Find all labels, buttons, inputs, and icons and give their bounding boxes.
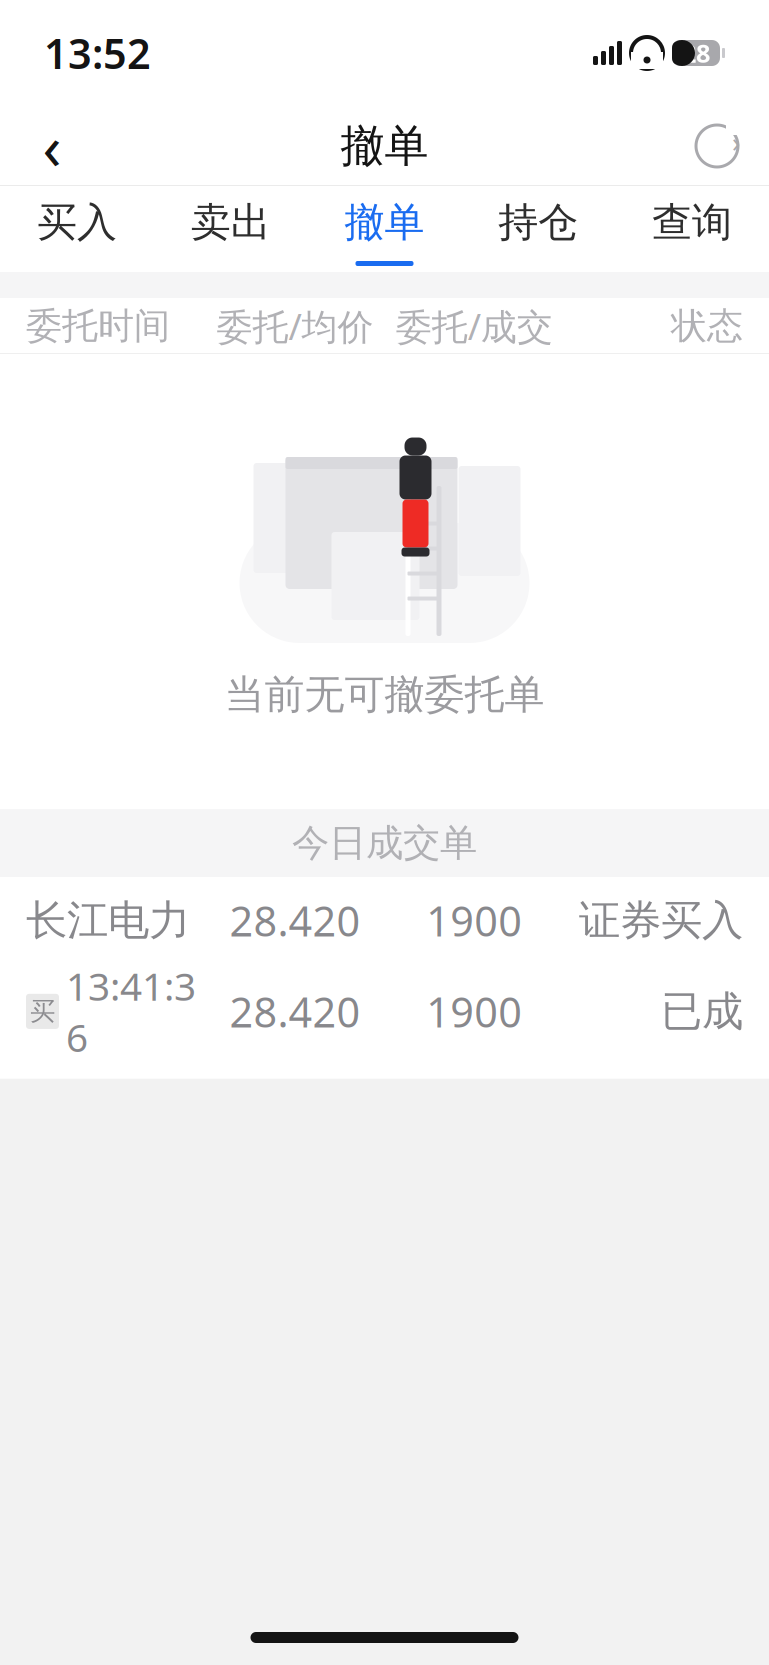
staticText: 13:52: [44, 26, 151, 80]
button[interactable]: 长江电力: [0, 877, 769, 1079]
button[interactable]: 持仓: [461, 186, 615, 272]
staticText: ‹: [42, 105, 61, 187]
button[interactable]: 买入: [0, 186, 154, 272]
button[interactable]: 卖出: [154, 186, 308, 272]
staticText: 卖出: [191, 198, 271, 247]
staticText: 委托时间: [26, 304, 170, 348]
staticText: 委托/成交: [396, 302, 553, 350]
button[interactable]: Back: [8, 107, 96, 185]
button[interactable]: 查询: [615, 186, 769, 272]
staticText: 1900: [426, 893, 522, 948]
staticText: 状态: [671, 304, 743, 348]
button[interactable]: Refresh: [673, 107, 761, 185]
staticText: 1900: [426, 984, 522, 1039]
staticText: 长江电力: [26, 895, 190, 946]
staticText: 买入: [37, 198, 117, 247]
staticText: 28.420: [229, 984, 360, 1039]
button[interactable]: 撤单: [308, 186, 461, 272]
staticText: 当前无可撤委托单: [224, 670, 544, 719]
staticText: 撤单: [340, 119, 428, 173]
staticText: 28.420: [229, 893, 360, 948]
staticText: 查询: [652, 198, 732, 247]
staticText: 委托/均价: [216, 302, 373, 350]
staticText: 撤单: [344, 198, 424, 247]
staticText: ›: [732, 124, 740, 160]
staticText: 今日成交单: [292, 820, 477, 866]
staticText: 28: [682, 36, 710, 70]
staticText: 已成: [661, 986, 743, 1037]
staticText: 证券买入: [579, 895, 743, 946]
staticText: 13:41:36: [66, 960, 196, 1063]
staticText: 持仓: [498, 198, 578, 247]
staticText: 买: [30, 996, 55, 1027]
